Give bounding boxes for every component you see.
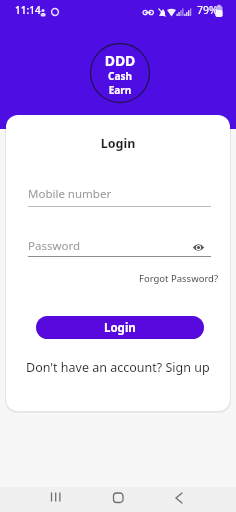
staticText: Mobile number xyxy=(28,186,112,202)
staticText: Earn xyxy=(90,83,150,97)
button[interactable]: Don't have an account? Sign up xyxy=(26,359,210,376)
button[interactable]: Login xyxy=(36,316,204,339)
staticText: Password xyxy=(28,238,81,254)
staticText: DDD xyxy=(90,51,150,70)
staticText: 79% xyxy=(197,3,218,17)
button[interactable] xyxy=(105,487,131,512)
button[interactable] xyxy=(192,242,205,253)
staticText: Login xyxy=(6,135,230,152)
button[interactable]: Mobile number xyxy=(28,179,211,207)
staticText: Cash xyxy=(90,69,150,83)
staticText: Login xyxy=(104,320,136,336)
button[interactable]: Forgot Password? xyxy=(139,272,219,285)
button[interactable] xyxy=(166,487,192,512)
staticText: 11:14 xyxy=(15,3,41,17)
button[interactable] xyxy=(44,487,70,512)
button[interactable]: Password xyxy=(28,230,211,257)
